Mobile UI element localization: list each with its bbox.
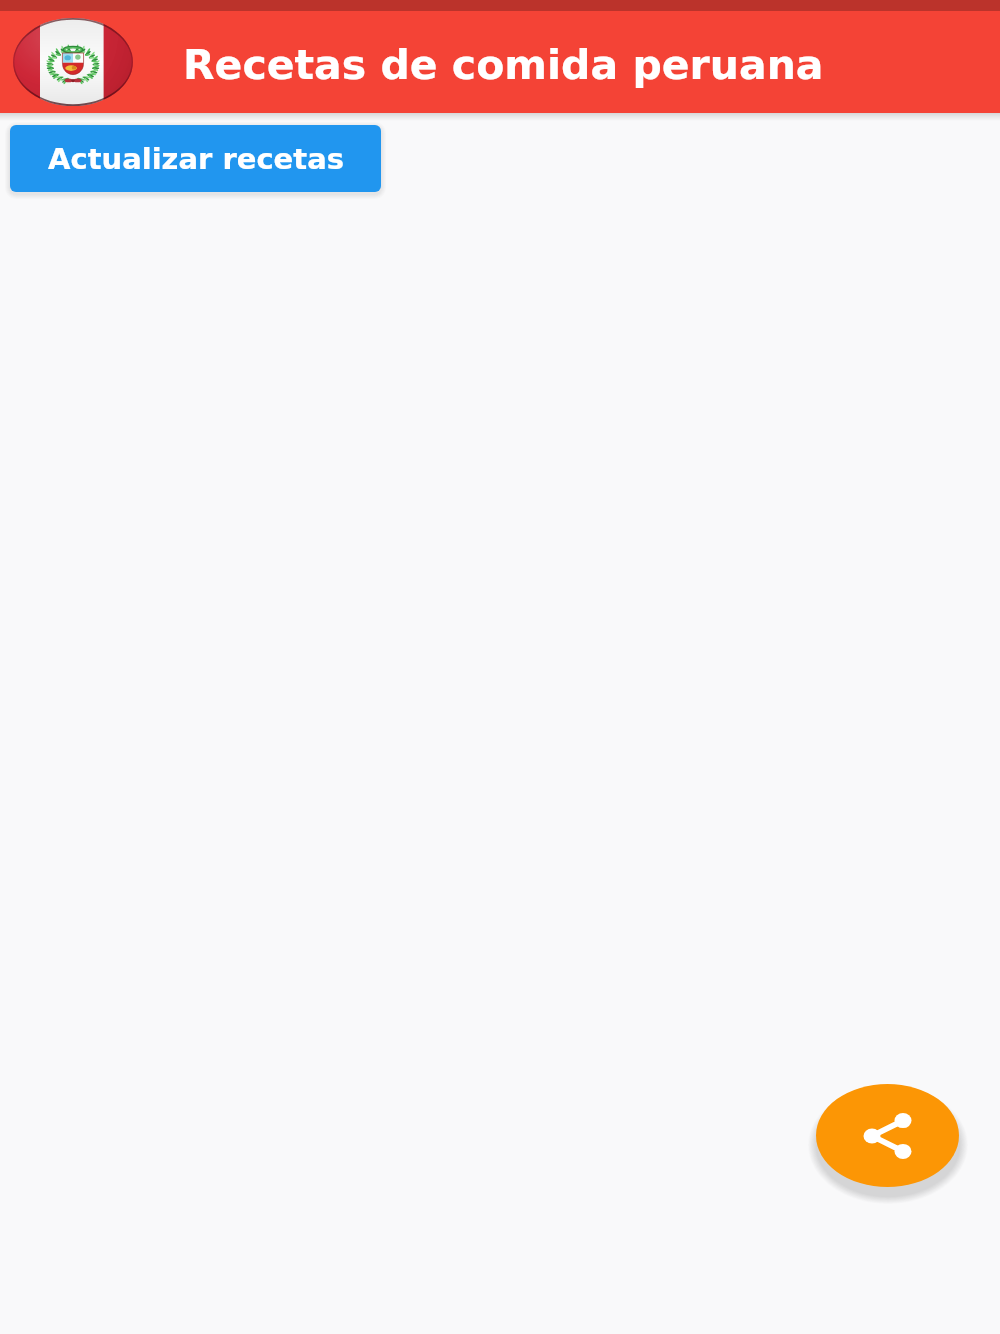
staticText: Recetas de comida peruana (183, 41, 824, 89)
button[interactable]: Share (816, 1084, 959, 1187)
staticText: Actualizar recetas (48, 142, 344, 176)
button[interactable]: Actualizar recetas (10, 125, 381, 192)
